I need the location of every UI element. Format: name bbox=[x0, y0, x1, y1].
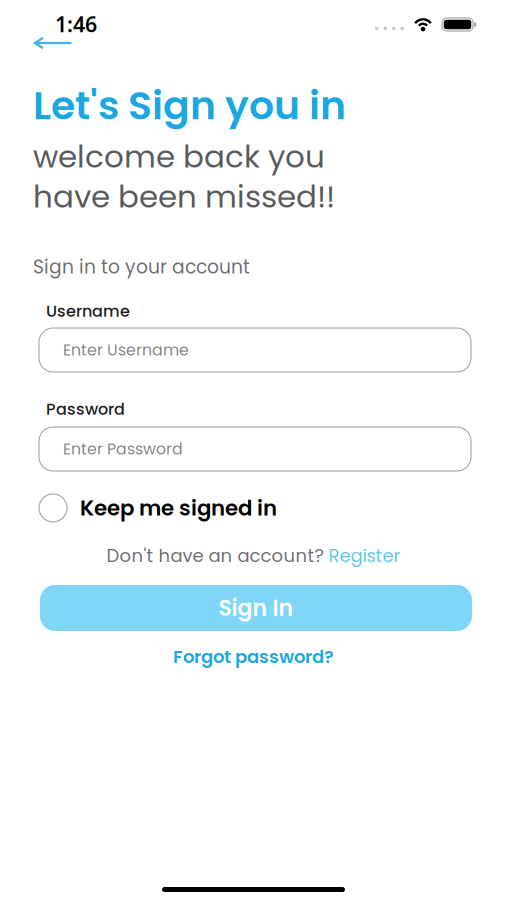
button[interactable]: Register bbox=[328, 543, 400, 568]
button[interactable]: Sign In bbox=[40, 585, 472, 631]
button[interactable]: Back bbox=[33, 37, 72, 49]
staticText: Password bbox=[46, 398, 125, 420]
staticText: Let's Sign you in bbox=[33, 78, 346, 133]
button[interactable]: Enter Username bbox=[39, 328, 471, 372]
staticText: Register bbox=[328, 543, 400, 568]
staticText: 1:46 bbox=[55, 10, 97, 38]
button[interactable]: Enter Password bbox=[39, 427, 471, 471]
staticText: Enter Password bbox=[63, 438, 183, 460]
staticText: Username bbox=[46, 300, 130, 322]
staticText: welcome back you bbox=[33, 135, 325, 178]
staticText: have been missed!! bbox=[33, 175, 335, 218]
staticText: Sign In bbox=[218, 593, 293, 623]
button[interactable]: Forgot password? bbox=[173, 644, 334, 669]
staticText: Don't have an account? bbox=[106, 543, 328, 568]
staticText: Forgot password? bbox=[173, 644, 334, 669]
staticText: Enter Username bbox=[63, 339, 189, 361]
button[interactable]: Keep me signed in bbox=[39, 493, 277, 523]
staticText: Sign in to your account bbox=[33, 254, 250, 280]
staticText: Keep me signed in bbox=[80, 493, 277, 523]
